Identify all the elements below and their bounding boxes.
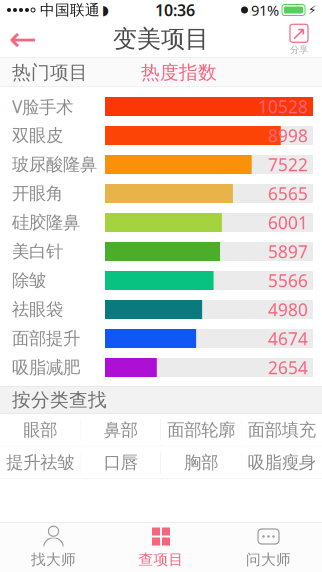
staticText: 10528 xyxy=(258,95,308,118)
button[interactable]: 找大师 xyxy=(0,522,107,572)
staticText: 查项目 xyxy=(138,550,183,568)
staticText: 10:36 xyxy=(155,0,195,21)
staticText: 硅胶隆鼻 xyxy=(12,212,80,233)
button[interactable]: 查项目 xyxy=(107,522,215,572)
button[interactable]: 吸脂瘦身 xyxy=(241,446,322,478)
staticText: 眼部 xyxy=(23,419,57,441)
staticText: 祛眼袋 xyxy=(12,299,63,320)
staticText: 吸脂瘦身 xyxy=(248,452,316,473)
staticText: 7522 xyxy=(268,153,308,176)
button[interactable]: 眼部 xyxy=(0,414,80,446)
staticText: 4674 xyxy=(268,327,308,350)
button[interactable]: 返回 xyxy=(0,20,46,58)
staticText: 5566 xyxy=(268,269,308,292)
staticText: 热度指数 xyxy=(141,61,217,84)
staticText: 变美项目 xyxy=(113,24,209,54)
button[interactable]: 面部轮廓 xyxy=(161,414,241,446)
staticText: ↗ xyxy=(291,23,307,44)
staticText: 胸部 xyxy=(184,452,218,473)
staticText: 开眼角 xyxy=(12,183,63,204)
staticText: 问大师 xyxy=(246,550,291,568)
staticText: 面部轮廓 xyxy=(167,419,235,441)
staticText: 8998 xyxy=(268,124,308,147)
staticText: 4980 xyxy=(268,298,308,321)
button[interactable]: 口唇 xyxy=(80,446,161,478)
staticText: 热门项目 xyxy=(12,61,88,84)
staticText: ← xyxy=(9,20,37,58)
staticText: 6565 xyxy=(268,182,308,205)
staticText: V脸手术 xyxy=(12,95,73,118)
staticText: 口唇 xyxy=(104,452,138,473)
button[interactable]: 分享 xyxy=(276,20,322,58)
staticText: 6001 xyxy=(268,211,308,234)
staticText: 5897 xyxy=(268,240,308,263)
staticText: 找大师 xyxy=(31,550,76,568)
staticText: 玻尿酸隆鼻 xyxy=(12,154,97,175)
button[interactable]: 鼻部 xyxy=(80,414,161,446)
staticText: 提升祛皱 xyxy=(6,452,74,473)
button[interactable]: 胸部 xyxy=(161,446,241,478)
staticText: ◗ xyxy=(102,2,109,17)
staticText: 分享 xyxy=(290,44,308,55)
staticText: 91% xyxy=(251,0,279,20)
button[interactable]: 问大师 xyxy=(215,522,322,572)
staticText: 除皱 xyxy=(12,270,46,291)
staticText: 鼻部 xyxy=(104,419,138,441)
staticText: 吸脂减肥 xyxy=(12,357,80,378)
staticText: 中国联通 xyxy=(40,1,100,19)
staticText: ⚡︎ xyxy=(308,3,316,17)
staticText: 按分类查找 xyxy=(12,388,107,411)
staticText: 美白针 xyxy=(12,241,63,262)
staticText: 面部提升 xyxy=(12,328,80,349)
staticText: 2654 xyxy=(268,356,308,379)
button[interactable]: 提升祛皱 xyxy=(0,446,80,478)
staticText: 双眼皮 xyxy=(12,125,63,146)
staticText: 面部填充 xyxy=(248,419,316,441)
button[interactable]: 面部填充 xyxy=(241,414,322,446)
